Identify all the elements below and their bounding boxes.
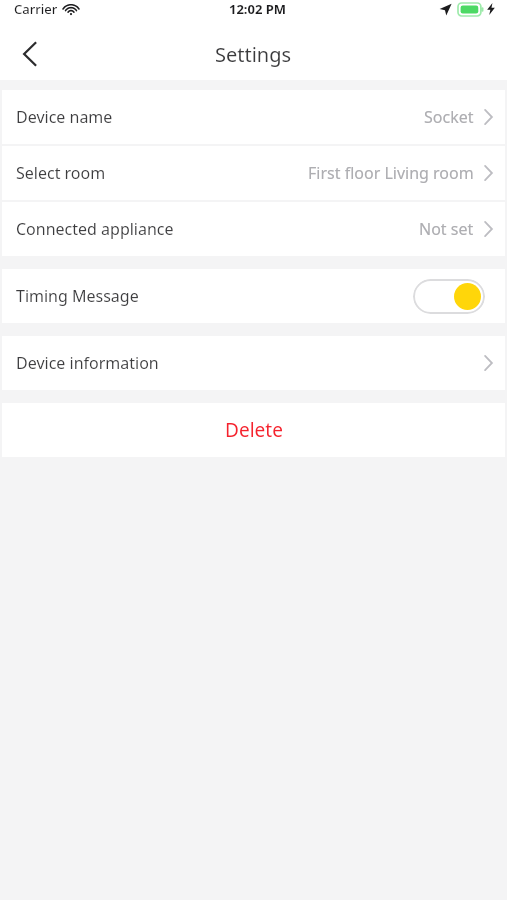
staticText: Delete xyxy=(225,417,283,443)
staticText: Timing Message xyxy=(16,285,139,307)
staticText: Not set xyxy=(419,218,474,240)
staticText: Connected appliance xyxy=(16,218,174,240)
staticText: Settings xyxy=(215,41,292,68)
button[interactable]: Select room xyxy=(2,146,505,200)
staticText: Select room xyxy=(16,162,106,184)
staticText: First floor Living room xyxy=(308,162,474,184)
button[interactable]: Delete xyxy=(2,403,505,457)
button[interactable]: Back xyxy=(6,30,54,78)
staticText: Device name xyxy=(16,106,113,128)
button[interactable]: Device name xyxy=(2,90,505,144)
staticText: 12:02 PM xyxy=(229,0,287,18)
button[interactable]: Device information xyxy=(2,336,505,390)
staticText: Carrier xyxy=(14,0,58,18)
staticText: Device information xyxy=(16,352,159,374)
button[interactable]: Timing Message toggle xyxy=(413,279,485,314)
staticText: Socket xyxy=(424,106,474,128)
button[interactable]: Timing Message xyxy=(2,269,505,323)
button[interactable]: Connected appliance xyxy=(2,202,505,256)
